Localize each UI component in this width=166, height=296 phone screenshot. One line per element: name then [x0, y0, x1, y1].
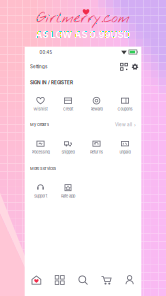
button[interactable]: Support [27, 181, 54, 200]
button[interactable]: Credit [54, 94, 81, 113]
staticText: Wishlist [33, 107, 47, 111]
button[interactable]: Scan [118, 61, 130, 73]
staticText: AS LOW AS 0.99USD [35, 29, 130, 40]
staticText: SIGN IN / REGISTER [30, 80, 73, 85]
staticText: Shipped [61, 150, 74, 154]
button[interactable]: unpaid [111, 137, 138, 156]
button[interactable]: Rate app [54, 181, 81, 200]
button[interactable]: Cart [96, 272, 116, 288]
staticText: My Orders [30, 122, 49, 127]
staticText: Support [34, 194, 47, 198]
button[interactable]: Account [120, 272, 140, 288]
button[interactable]: Search [73, 272, 93, 288]
staticText: Processing [31, 150, 49, 154]
button[interactable]: Home [26, 272, 46, 288]
button[interactable]: Shipped [54, 137, 81, 156]
staticText: Credit [63, 107, 73, 111]
button[interactable]: SIGN IN / REGISTER [30, 80, 73, 85]
button[interactable]: Settings [129, 61, 141, 73]
button[interactable]: Categories [50, 272, 70, 288]
staticText: Reward [90, 107, 102, 111]
staticText: Coupons [117, 107, 132, 111]
staticText: Settings [30, 64, 47, 69]
button[interactable]: Reward [83, 94, 110, 113]
button[interactable]: Coupons [111, 94, 138, 113]
staticText: More Services [30, 166, 56, 171]
button[interactable]: Wishlist [27, 94, 54, 113]
staticText: View all › [115, 122, 136, 127]
button[interactable]: Returns [83, 137, 110, 156]
staticText: Returns [90, 150, 103, 154]
staticText: unpaid [119, 150, 130, 154]
button[interactable]: View all › [115, 122, 136, 127]
staticText: Rate app [61, 194, 75, 198]
staticText: Girlmerry.com [36, 8, 129, 28]
staticText: 00:45 [39, 50, 52, 55]
button[interactable]: Processing [27, 137, 54, 156]
